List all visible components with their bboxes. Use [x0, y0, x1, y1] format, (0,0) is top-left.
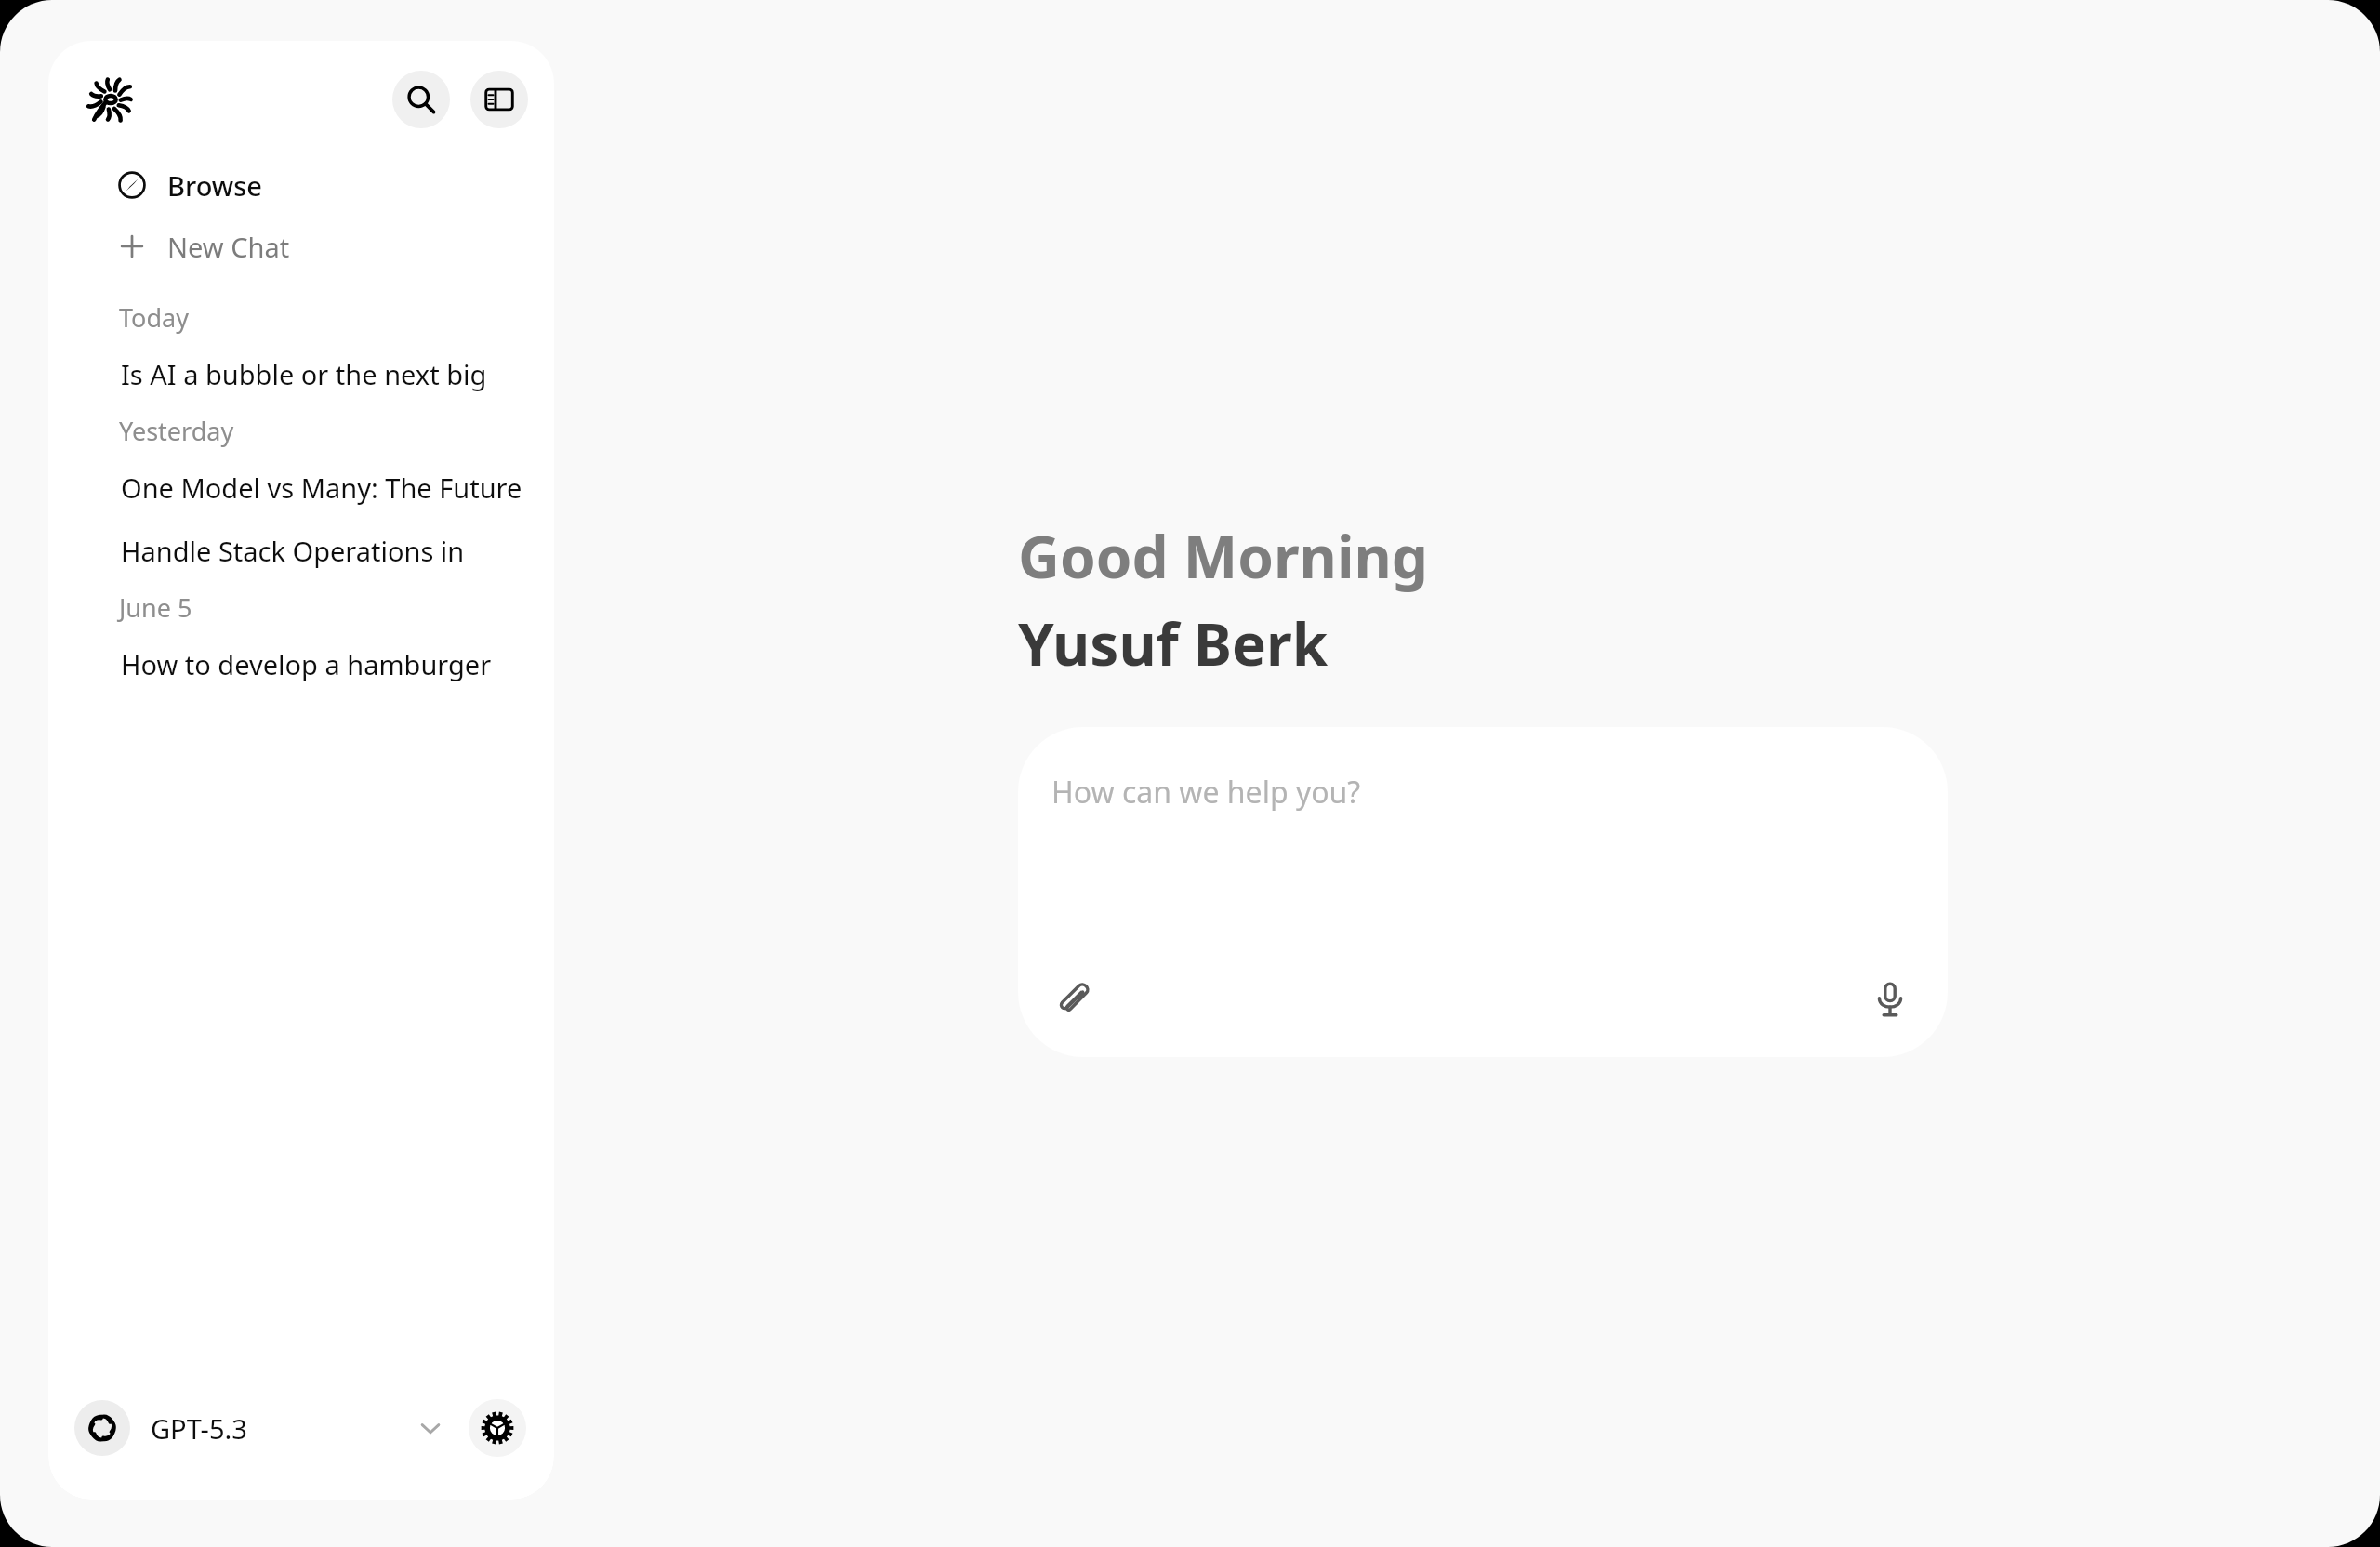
button[interactable]: How can we help you? — [1018, 727, 1948, 1057]
button[interactable]: How to develop a hamburger men… — [48, 632, 554, 695]
button[interactable]: Is AI a bubble or the next big platf… — [48, 342, 554, 405]
staticText: One Model vs Many: The Future of… — [121, 469, 535, 506]
staticText: How to develop a hamburger men… — [121, 646, 535, 682]
button[interactable]: App logo — [76, 65, 145, 134]
staticText: New Chat — [167, 229, 290, 265]
staticText: Browse — [167, 167, 262, 204]
button[interactable]: Handle Stack Operations in Stac… — [48, 519, 554, 582]
staticText: Is AI a bubble or the next big platf… — [121, 356, 535, 392]
staticText: Good Morning — [1018, 517, 1428, 595]
staticText: Yesterday — [119, 414, 234, 448]
button[interactable]: One Model vs Many: The Future of… — [48, 456, 554, 519]
staticText: GPT-5.3 — [151, 1410, 247, 1447]
staticText: Yusuf Berk — [1018, 604, 1329, 682]
button[interactable]: Settings — [469, 1399, 526, 1457]
button[interactable]: Voice input — [1860, 970, 1920, 1029]
staticText: How can we help you? — [1051, 772, 1361, 813]
button[interactable]: Search — [392, 71, 450, 128]
button[interactable]: New Chat — [48, 216, 554, 277]
button[interactable]: Browse — [48, 154, 554, 216]
staticText: June 5 — [119, 590, 192, 625]
button[interactable]: Attach file — [1044, 970, 1104, 1029]
button[interactable]: GPT-5.3 — [74, 1400, 446, 1456]
staticText: Handle Stack Operations in Stac… — [121, 533, 535, 569]
button[interactable]: Toggle sidebar — [470, 71, 528, 128]
staticText: Today — [119, 300, 189, 335]
